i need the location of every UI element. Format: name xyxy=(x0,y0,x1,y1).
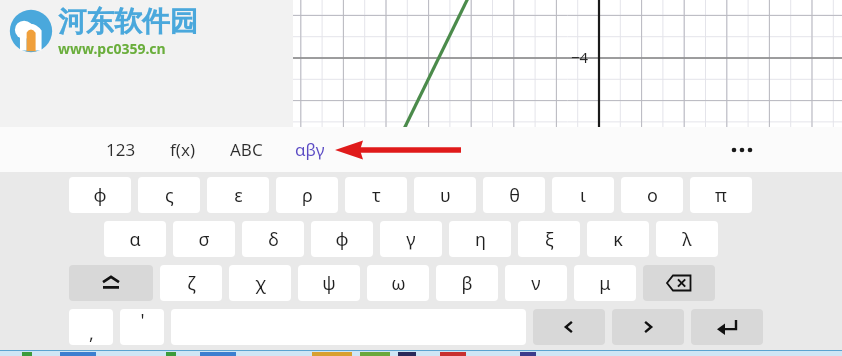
button[interactable]: ο xyxy=(621,177,683,213)
staticText: www.pc0359.cn xyxy=(58,39,166,58)
staticText: f(x) xyxy=(170,138,196,161)
button[interactable]: ψ xyxy=(298,265,360,301)
button[interactable]: ς xyxy=(138,177,200,213)
button[interactable]: μ xyxy=(574,265,636,301)
staticText: ρ xyxy=(302,183,313,208)
staticText: υ xyxy=(440,183,451,208)
button[interactable]: Enter xyxy=(691,309,763,345)
button[interactable]: χ xyxy=(229,265,291,301)
button[interactable]: ξ xyxy=(518,221,580,257)
button[interactable]: π xyxy=(690,177,752,213)
staticText: κ xyxy=(613,227,623,252)
staticText: −4 xyxy=(571,47,589,67)
button[interactable]: Move right xyxy=(612,309,684,345)
button[interactable]: δ xyxy=(242,221,304,257)
button[interactable]: ζ xyxy=(160,265,222,301)
staticText: ψ xyxy=(322,271,336,296)
staticText: η xyxy=(475,227,486,252)
button[interactable]: ι xyxy=(552,177,614,213)
button[interactable]: αβγ xyxy=(289,127,331,172)
button[interactable]: φ xyxy=(311,221,373,257)
button[interactable]: ν xyxy=(505,265,567,301)
staticText: 123 xyxy=(106,138,136,161)
button[interactable]: τ xyxy=(345,177,407,213)
staticText: μ xyxy=(599,271,611,296)
button[interactable]: ' xyxy=(120,309,164,345)
button[interactable]: γ xyxy=(380,221,442,257)
button[interactable]: Move left xyxy=(533,309,605,345)
button[interactable]: Backspace xyxy=(643,265,715,301)
staticText: χ xyxy=(255,271,266,296)
staticText: ε xyxy=(234,183,243,208)
button[interactable]: ρ xyxy=(276,177,338,213)
staticText: ABC xyxy=(230,138,263,161)
button[interactable]: κ xyxy=(587,221,649,257)
button[interactable]: ω xyxy=(367,265,429,301)
staticText: β xyxy=(461,271,473,296)
staticText: , xyxy=(89,321,94,345)
button[interactable]: θ xyxy=(483,177,545,213)
staticText: τ xyxy=(372,183,381,208)
staticText: φ xyxy=(335,227,349,252)
staticText: π xyxy=(715,183,727,208)
staticText: δ xyxy=(268,227,279,252)
button[interactable]: α xyxy=(104,221,166,257)
staticText: ' xyxy=(140,309,145,333)
staticText: γ xyxy=(406,227,416,252)
button[interactable]: υ xyxy=(414,177,476,213)
button[interactable]: Shift xyxy=(69,265,153,301)
staticText: ι xyxy=(580,183,586,208)
button[interactable]: ABC xyxy=(224,127,269,172)
button[interactable]: σ xyxy=(173,221,235,257)
staticText: α xyxy=(129,227,141,252)
staticText: ξ xyxy=(545,227,554,252)
button[interactable]: f(x) xyxy=(164,127,202,172)
staticText: αβγ xyxy=(295,138,325,161)
button[interactable]: , xyxy=(69,309,113,345)
button[interactable]: 123 xyxy=(100,127,142,172)
staticText: ς xyxy=(165,183,174,208)
button[interactable]: η xyxy=(449,221,511,257)
staticText: φ xyxy=(93,183,107,208)
staticText: σ xyxy=(198,227,210,252)
button[interactable]: φ xyxy=(69,177,131,213)
staticText: 河东软件园 xyxy=(58,4,198,39)
staticText: θ xyxy=(509,183,520,208)
staticText: ν xyxy=(531,271,541,296)
button[interactable]: β xyxy=(436,265,498,301)
staticText: ο xyxy=(647,183,658,208)
button[interactable]: More options xyxy=(720,128,764,172)
button[interactable]: λ xyxy=(656,221,718,257)
staticText: ζ xyxy=(187,271,196,296)
button[interactable]: ε xyxy=(207,177,269,213)
staticText: ω xyxy=(391,271,406,296)
staticText: λ xyxy=(682,227,692,252)
